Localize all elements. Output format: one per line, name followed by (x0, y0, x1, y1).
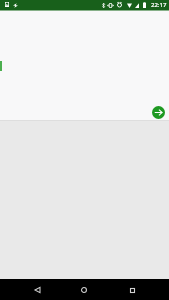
button[interactable]: Back (27, 280, 47, 300)
button[interactable]: Home (74, 280, 94, 300)
button[interactable]: Recent apps (122, 280, 142, 300)
button[interactable]: Next (152, 106, 165, 119)
staticText: 22:17 (151, 1, 167, 9)
